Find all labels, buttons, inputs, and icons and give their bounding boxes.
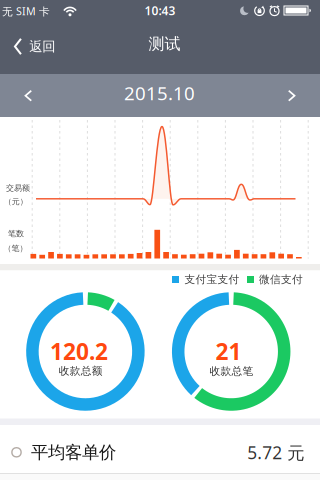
staticText: 测试 [148, 34, 180, 54]
staticText: 10:43 [144, 2, 175, 18]
staticText: 交易额 [6, 183, 30, 193]
staticText: 无 SIM 卡 [2, 4, 50, 18]
staticText: 笔数 [8, 229, 24, 238]
button[interactable] [12, 78, 45, 114]
staticText: （元） [4, 197, 28, 206]
staticText: 120.2 [50, 336, 108, 366]
staticText: 收款总笔 [209, 364, 253, 378]
button[interactable]: 平均客单价 [0, 425, 320, 473]
staticText: 支付宝支付 [184, 273, 239, 286]
staticText: 21 [215, 336, 241, 366]
staticText: 平均客单价 [31, 442, 116, 463]
staticText: （笔） [4, 243, 28, 253]
staticText: 5.72 元 [247, 441, 304, 464]
staticText: 2015.10 [124, 81, 195, 105]
staticText: 返回 [29, 38, 55, 55]
button[interactable] [275, 78, 308, 114]
staticText: 微信支付 [259, 273, 303, 286]
button[interactable]: 返回 [3, 24, 63, 68]
staticText: 收款总额 [59, 364, 103, 377]
